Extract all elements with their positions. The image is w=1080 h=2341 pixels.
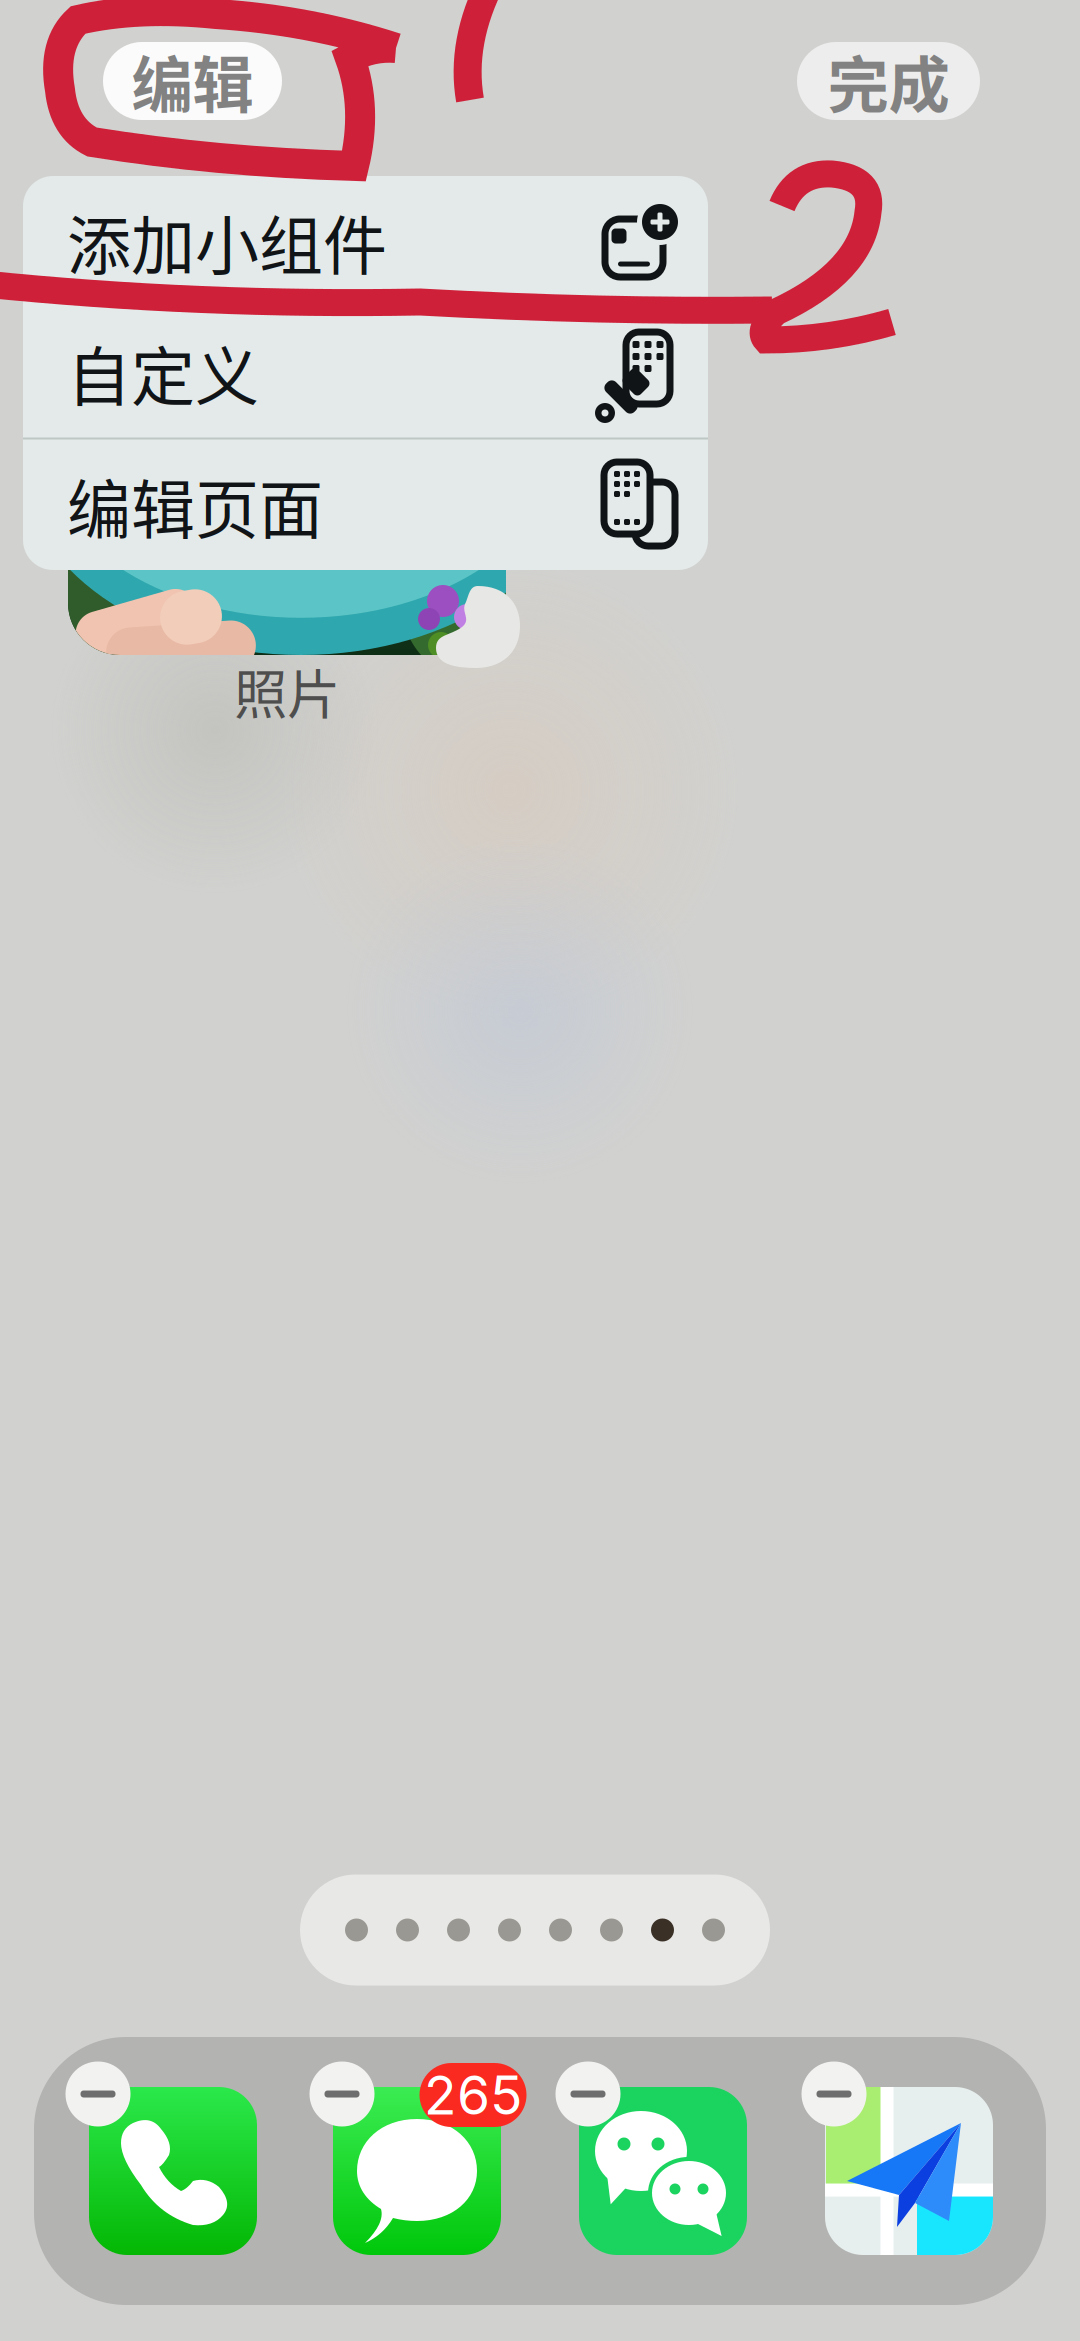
staticText: 添加小组件: [67, 195, 387, 287]
button[interactable]: Messages: [333, 2087, 501, 2255]
button[interactable]: 编辑: [103, 42, 282, 120]
staticText: 编辑: [131, 37, 253, 125]
staticText: 完成: [827, 37, 949, 125]
button[interactable]: Phone: [89, 2087, 257, 2255]
staticText: 照片: [234, 652, 340, 730]
button[interactable]: Maps: [825, 2087, 993, 2255]
staticText: 编辑页面: [67, 459, 323, 551]
staticText: 265: [424, 2063, 522, 2127]
button[interactable]: 编辑页面: [23, 439, 708, 570]
staticText: 自定义: [67, 326, 259, 418]
button[interactable]: 添加小组件: [23, 175, 708, 306]
button[interactable]: 自定义: [23, 306, 708, 437]
button[interactable]: WeChat: [579, 2087, 747, 2255]
button[interactable]: 完成: [797, 42, 980, 120]
